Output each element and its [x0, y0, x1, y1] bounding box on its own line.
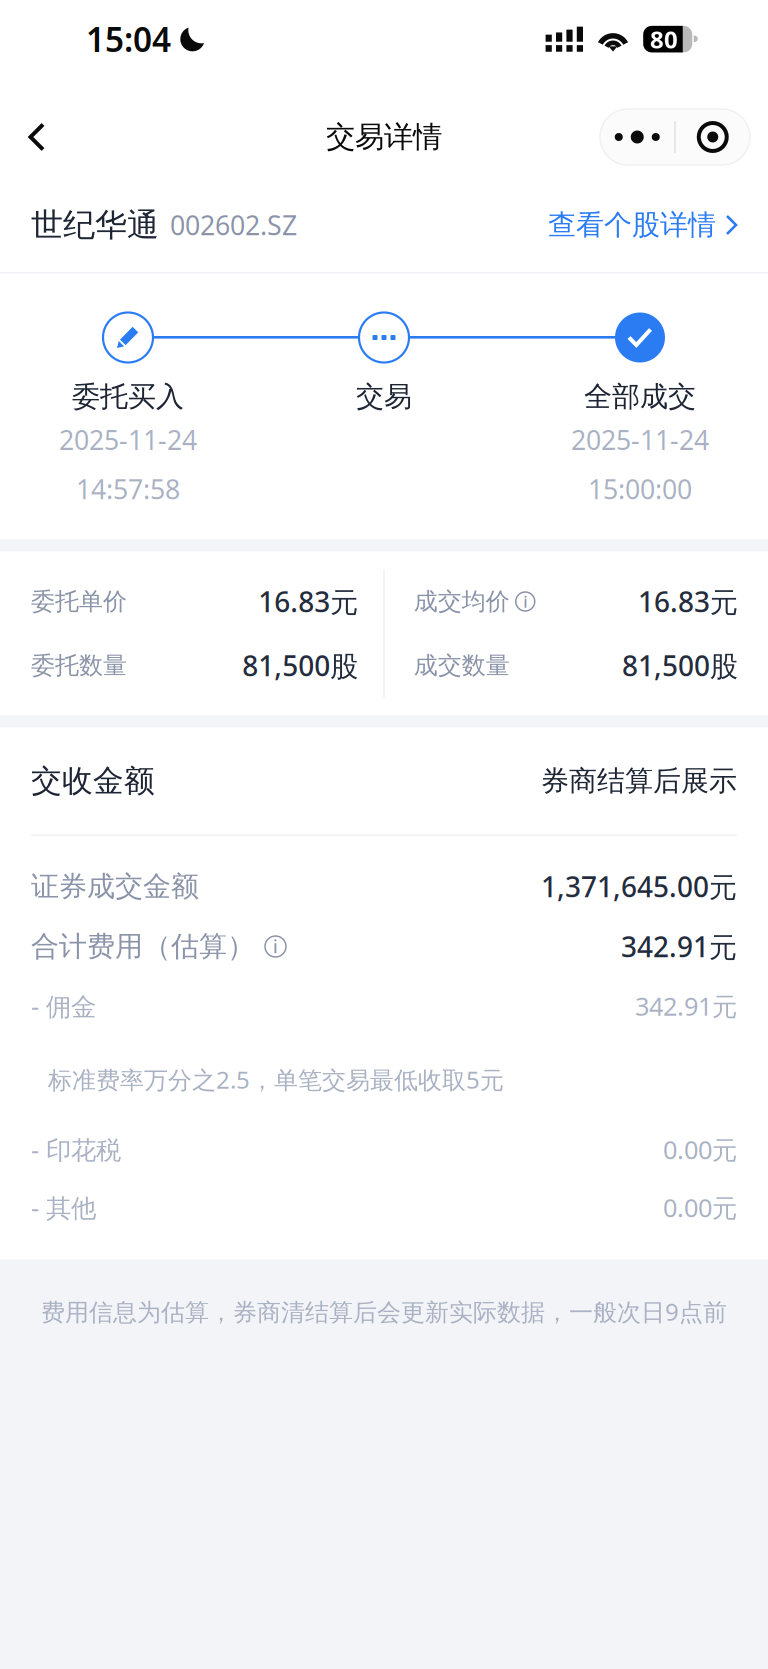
staticText: 0.00元 [663, 1191, 737, 1224]
staticText: 标准费率万分之2.5，单笔交易最低收取5元 [48, 1064, 504, 1095]
staticText: 委托买入 [72, 379, 184, 414]
staticText: 全部成交 [584, 379, 696, 414]
button[interactable]: 查看个股详情 [548, 194, 738, 256]
staticText: 81,500股 [622, 647, 738, 684]
staticText: 交易详情 [326, 119, 442, 155]
staticText: 委托单价 [31, 587, 127, 616]
staticText: 81,500股 [242, 647, 358, 684]
staticText: 14:57:58 [76, 471, 180, 507]
staticText: 券商结算后展示 [541, 764, 737, 798]
staticText: 16.83元 [638, 583, 738, 620]
staticText: 2025-11-24 [59, 422, 197, 457]
staticText: - 印花税 [31, 1133, 121, 1166]
staticText: 1,371,645.00元 [541, 868, 737, 905]
button[interactable]: 更多 [600, 109, 674, 165]
staticText: 世纪华通 [31, 205, 159, 245]
staticText: 证券成交金额 [31, 869, 199, 904]
staticText: - 其他 [31, 1191, 96, 1224]
staticText: - 佣金 [31, 989, 96, 1023]
staticText: 342.91元 [621, 928, 737, 965]
staticText: 002602.SZ [170, 207, 297, 243]
staticText: 16.83元 [258, 583, 358, 620]
staticText: 15:00:00 [588, 471, 692, 507]
staticText: 0.00元 [663, 1133, 737, 1166]
staticText: 15:04 [86, 17, 171, 61]
staticText: 委托数量 [31, 651, 127, 680]
button[interactable]: 关闭 [676, 109, 750, 165]
staticText: 2025-11-24 [571, 422, 709, 457]
staticText: i [273, 935, 278, 958]
staticText: 查看个股详情 [548, 208, 716, 242]
staticText: 交收金额 [31, 762, 155, 800]
staticText: 费用信息为估算，券商清结算后会更新实际数据，一般次日9点前 [41, 1295, 727, 1327]
staticText: 成交数量 [414, 651, 510, 680]
staticText: 342.91元 [635, 989, 737, 1023]
staticText: i [523, 591, 527, 612]
button[interactable]: 返回 [0, 96, 74, 178]
staticText: 合计费用（估算） [31, 929, 255, 964]
staticText: 80 [650, 23, 678, 55]
staticText: 成交均价 [414, 587, 510, 616]
staticText: 交易 [356, 379, 412, 414]
